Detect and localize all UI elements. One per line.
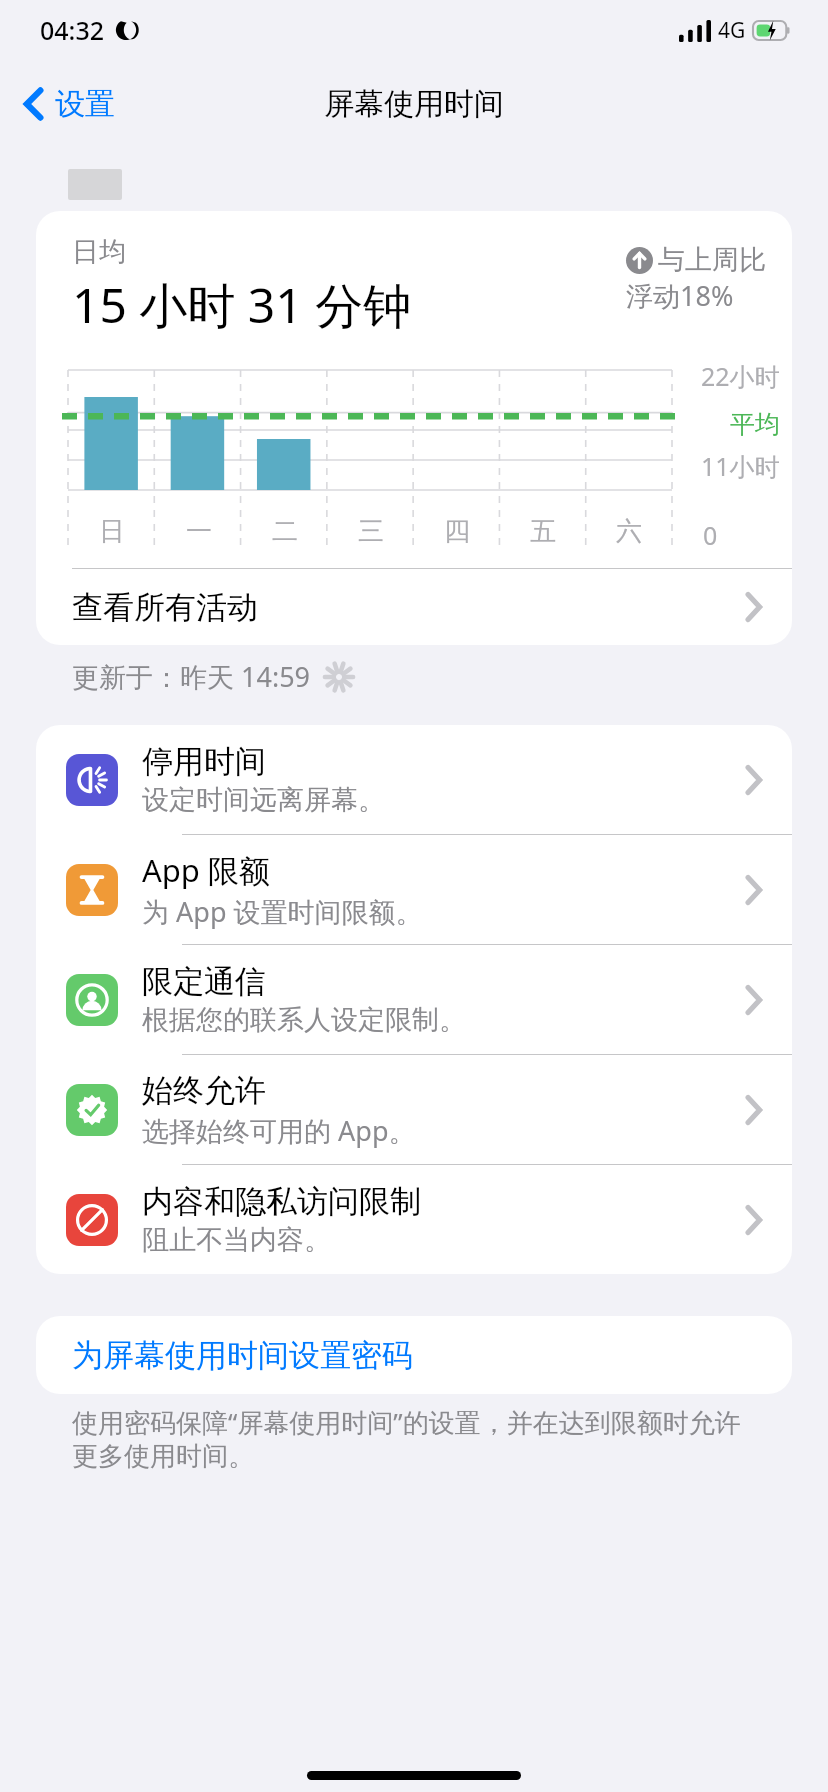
staticText: 四: [444, 515, 470, 548]
staticText: 六: [616, 515, 642, 548]
staticText: 为屏幕使用时间设置密码: [72, 1336, 413, 1375]
staticText: 限定通信: [142, 962, 266, 1001]
staticText: 三: [358, 515, 384, 548]
staticText: 浮动18%: [626, 277, 734, 314]
staticText: 阻止不当内容。: [142, 1223, 331, 1257]
staticText: 设置: [55, 85, 115, 123]
staticText: 二: [272, 515, 298, 548]
button[interactable]: 限定通信: [36, 945, 792, 1054]
button[interactable]: 始终允许: [36, 1055, 792, 1164]
staticText: 平均: [730, 409, 780, 440]
staticText: 与上周比: [658, 243, 766, 277]
staticText: 查看所有活动: [72, 588, 745, 627]
staticText: 日: [99, 515, 125, 548]
staticText: 更新于：昨天 14:59: [72, 658, 311, 695]
staticText: 一: [186, 515, 212, 548]
button[interactable]: App 限额: [36, 835, 792, 944]
staticText: 0: [703, 518, 718, 552]
staticText: 04:32: [40, 13, 105, 47]
staticText: 五: [530, 515, 556, 548]
staticText: 根据您的联系人设定限制。: [142, 1003, 466, 1037]
staticText: 屏幕使用时间: [324, 85, 504, 123]
staticText: 15 小时 31 分钟: [72, 272, 412, 338]
staticText: 始终允许: [142, 1071, 266, 1110]
button[interactable]: 查看所有活动: [36, 569, 792, 645]
staticText: 11小时: [701, 449, 780, 483]
button[interactable]: 为屏幕使用时间设置密码: [36, 1316, 792, 1394]
staticText: 日均: [72, 235, 126, 269]
staticText: 内容和隐私访问限制: [142, 1182, 421, 1221]
staticText: App 限额: [142, 849, 270, 891]
button[interactable]: 设置: [0, 77, 131, 131]
staticText: 22小时: [701, 359, 780, 393]
staticText: 选择始终可用的 App。: [142, 1112, 416, 1149]
staticText: 4G: [718, 16, 746, 45]
staticText: 停用时间: [142, 742, 266, 781]
button[interactable]: 停用时间: [36, 725, 792, 834]
button[interactable]: 内容和隐私访问限制: [36, 1165, 792, 1274]
staticText: 使用密码保障“屏幕使用时间”的设置，并在达到限额时允许更多使用时间。: [72, 1404, 756, 1473]
staticText: 为 App 设置时间限额。: [142, 893, 423, 930]
staticText: 设定时间远离屏幕。: [142, 783, 385, 817]
